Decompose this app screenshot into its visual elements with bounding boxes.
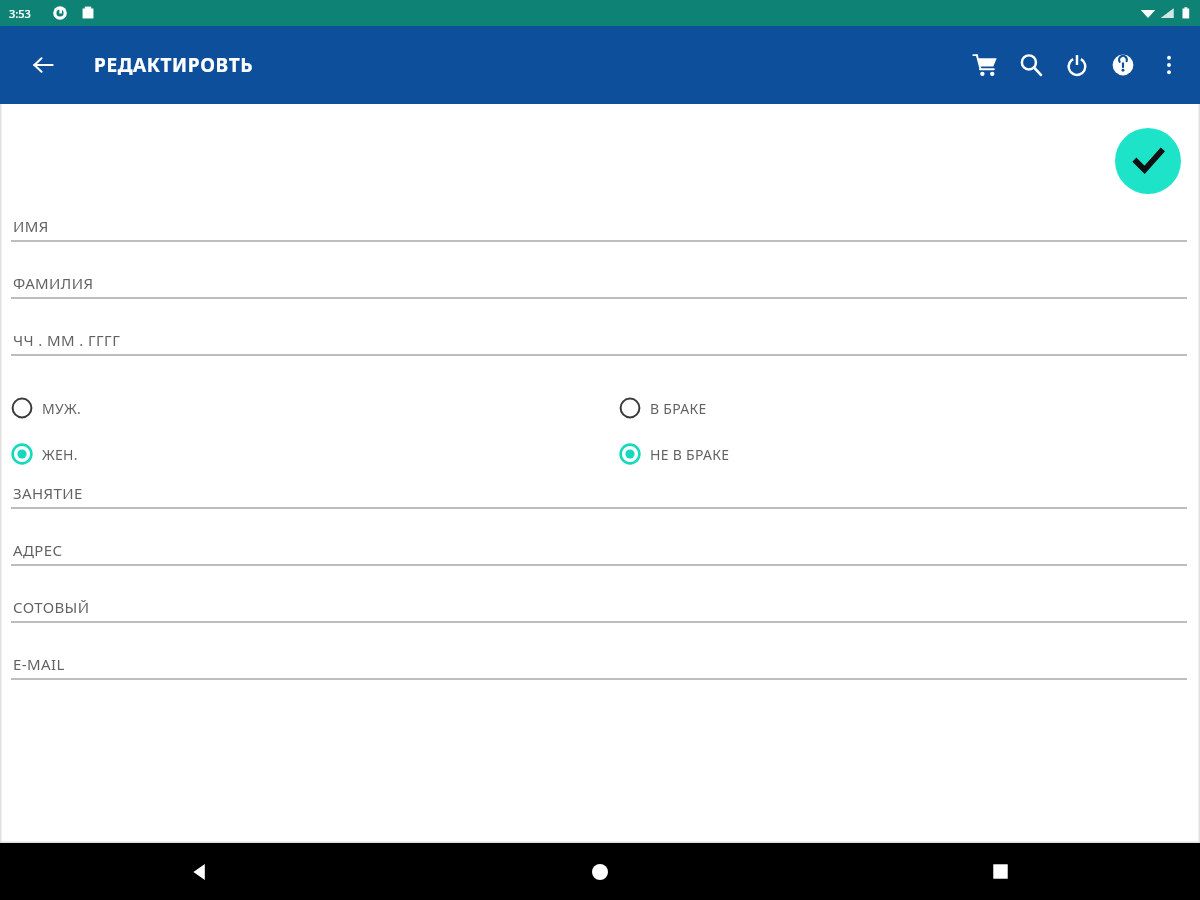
button[interactable]: Home [400,843,800,900]
button[interactable]: Shopping cart [962,37,1008,93]
button[interactable]: Search [1008,37,1054,93]
button[interactable]: More options [1146,37,1192,93]
staticText: НЕ В БРАКЕ [650,445,730,464]
staticText: МУЖ. [42,399,81,418]
button[interactable]: E-MAIL [0,654,1200,711]
staticText: ИМЯ [13,216,49,236]
button[interactable]: Save [1115,128,1181,194]
staticText: РЕДАКТИРОВТЬ [94,52,254,78]
button[interactable]: В БРАКЕ [619,397,707,419]
button[interactable]: Back [0,843,400,900]
staticText: ФАМИЛИЯ [13,273,94,293]
button[interactable]: ЖЕН. [11,443,78,465]
staticText: ЖЕН. [42,445,78,464]
button[interactable]: НЕ В БРАКЕ [619,443,730,465]
staticText: E-MAIL [13,654,65,674]
staticText: 3:53 [9,6,31,21]
button[interactable]: АДРЕС [0,540,1200,597]
button[interactable]: Power [1054,37,1100,93]
button[interactable]: Help [1100,37,1146,93]
button[interactable]: СОТОВЫЙ [0,597,1200,654]
button[interactable]: ФАМИЛИЯ [0,273,1200,330]
button[interactable]: ЧЧ . ММ . ГГГГ [0,330,1200,387]
button[interactable]: ЗАНЯТИЕ [0,483,1200,540]
button[interactable]: ИМЯ [0,216,1200,273]
staticText: ЗАНЯТИЕ [13,483,83,503]
button[interactable]: МУЖ. [11,397,81,419]
button[interactable]: Recent apps [800,843,1200,900]
staticText: СОТОВЫЙ [13,597,90,617]
staticText: АДРЕС [13,540,63,560]
staticText: ЧЧ . ММ . ГГГГ [13,330,121,350]
staticText: В БРАКЕ [650,399,707,418]
button[interactable]: Back [19,41,67,89]
